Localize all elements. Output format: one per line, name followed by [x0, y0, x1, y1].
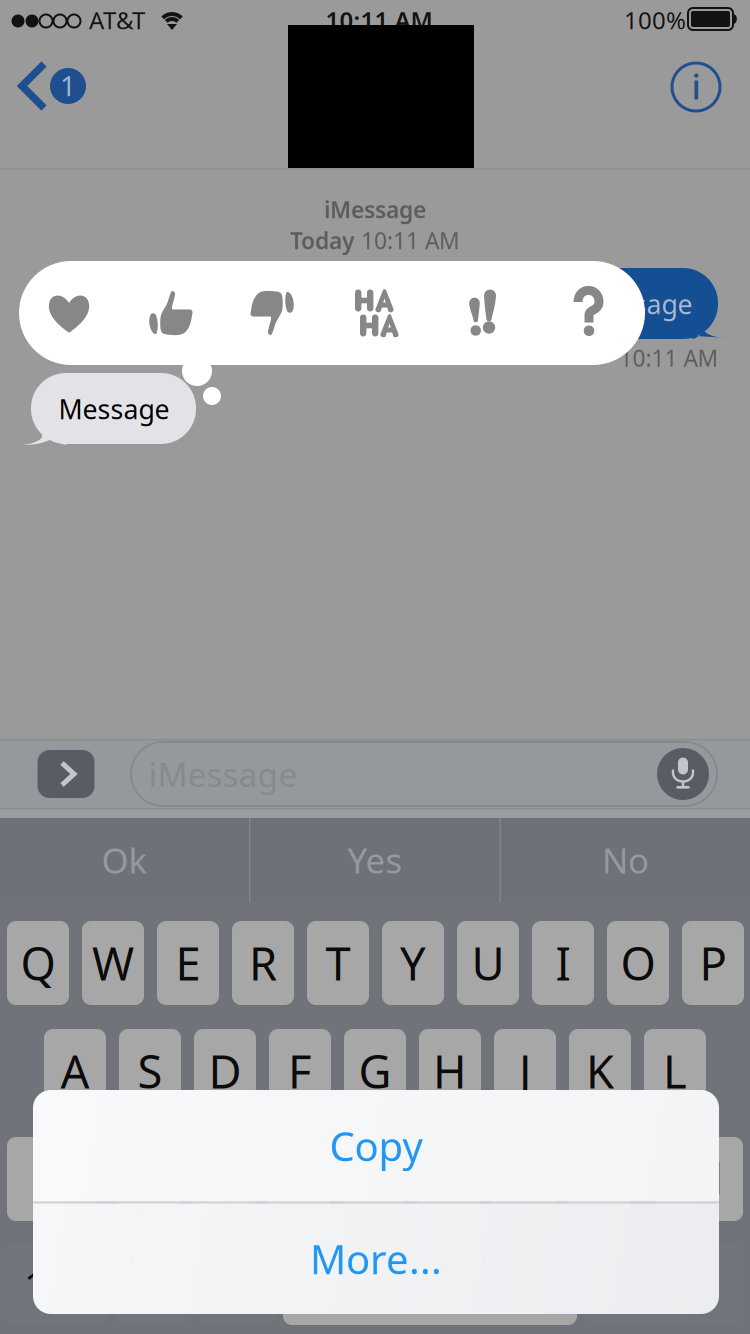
button[interactable]: M [568, 1137, 630, 1221]
staticText: return [611, 1260, 717, 1308]
button[interactable]: X [193, 1137, 255, 1221]
button[interactable]: App drawer [27, 742, 105, 806]
staticText: i [691, 63, 700, 109]
button[interactable]: C [268, 1137, 330, 1221]
staticText: AT&T [89, 4, 145, 36]
staticText: G [358, 1041, 391, 1101]
button[interactable]: Dictate [651, 742, 715, 806]
staticText: No [602, 837, 649, 883]
button[interactable]: K [569, 1029, 631, 1113]
button[interactable]: Dislike [222, 261, 322, 365]
button[interactable]: O [607, 921, 669, 1005]
staticText: F [288, 1041, 312, 1101]
button[interactable]: T [307, 921, 369, 1005]
staticText: Message [58, 391, 169, 427]
button[interactable]: R [232, 921, 294, 1005]
staticText: Q [20, 933, 55, 993]
staticText: N [507, 1149, 541, 1209]
button[interactable]: I [532, 921, 594, 1005]
staticText: Yes [347, 837, 402, 883]
staticText: A [60, 1041, 89, 1101]
button[interactable]: N [493, 1137, 555, 1221]
button[interactable]: Shift [7, 1137, 95, 1221]
button[interactable]: P [682, 921, 744, 1005]
staticText: J [519, 1041, 531, 1101]
staticText: E [175, 933, 200, 993]
button[interactable]: Love [19, 261, 119, 365]
button[interactable]: Exclamation [433, 261, 533, 365]
button[interactable]: Haha [328, 261, 428, 365]
staticText: 100% [624, 4, 686, 36]
staticText: O [620, 933, 655, 993]
button[interactable]: Y [382, 921, 444, 1005]
button[interactable]: G [344, 1029, 406, 1113]
staticText: L [663, 1041, 687, 1101]
staticText: Z [136, 1149, 162, 1209]
button[interactable]: A [44, 1029, 106, 1113]
staticText: T [325, 933, 350, 993]
button[interactable]: Delete [655, 1137, 743, 1221]
button[interactable]: D [194, 1029, 256, 1113]
button[interactable]: Space [283, 1243, 577, 1325]
staticText: Copy [329, 1119, 422, 1172]
button[interactable]: 123 [7, 1243, 107, 1325]
button[interactable]: V [343, 1137, 405, 1221]
button[interactable]: return [585, 1243, 744, 1325]
staticText: iMessage [148, 752, 297, 796]
staticText: B [434, 1149, 463, 1209]
staticText: U [471, 933, 504, 993]
staticText: 123 [24, 1258, 90, 1310]
staticText: M [578, 1149, 619, 1209]
button[interactable]: Details [653, 44, 739, 130]
button[interactable]: Copy [33, 1090, 719, 1202]
staticText: Y [400, 933, 426, 993]
staticText: V [360, 1149, 387, 1209]
staticText: P [699, 933, 726, 993]
staticText: K [586, 1041, 614, 1101]
staticText: S [137, 1041, 162, 1101]
button[interactable]: F [269, 1029, 331, 1113]
staticText: H [433, 1041, 467, 1101]
staticText: I [555, 933, 570, 993]
button[interactable]: E [157, 921, 219, 1005]
staticText: More... [310, 1232, 442, 1285]
button[interactable]: L [644, 1029, 706, 1113]
staticText: 10:11 AM [619, 343, 718, 373]
staticText: 10:11 AM [361, 225, 460, 256]
staticText: C [284, 1149, 313, 1209]
staticText: X [210, 1149, 237, 1209]
button[interactable]: Q [7, 921, 69, 1005]
button[interactable]: More... [33, 1203, 719, 1314]
staticText: R [249, 933, 277, 993]
staticText: iMessage [324, 194, 426, 224]
button[interactable]: Question mark [539, 261, 639, 365]
button[interactable]: Back, 1 unread message [15, 55, 125, 131]
staticText: 1 [60, 67, 76, 104]
button[interactable]: Z [118, 1137, 180, 1221]
staticText: Message [581, 286, 692, 322]
button[interactable]: Like [121, 261, 221, 365]
button[interactable]: W [82, 921, 144, 1005]
button[interactable]: U [457, 921, 519, 1005]
staticText: Today [290, 225, 354, 256]
button[interactable]: Dictate [199, 1243, 275, 1325]
staticText: W [92, 933, 134, 993]
button[interactable]: Emoji [115, 1243, 191, 1325]
button[interactable]: Ok [0, 818, 249, 902]
staticText: 10:11 AM [325, 4, 432, 36]
button[interactable]: No [501, 818, 750, 902]
button[interactable]: S [119, 1029, 181, 1113]
button[interactable]: Yes [250, 818, 499, 902]
button[interactable]: H [419, 1029, 481, 1113]
button[interactable]: B [418, 1137, 480, 1221]
button[interactable]: J [494, 1029, 556, 1113]
staticText: Ok [101, 837, 147, 883]
staticText: D [208, 1041, 241, 1101]
